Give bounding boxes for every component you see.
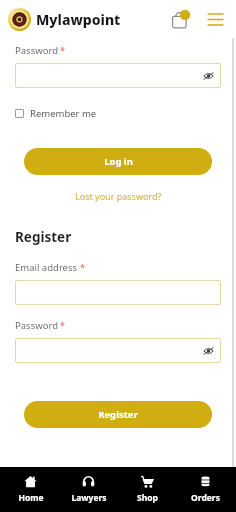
button[interactable]: Lost your password? [15,190,221,202]
button[interactable]: Cart, 0 items [170,6,196,32]
staticText: Log in [104,155,133,168]
staticText: Orders [191,492,220,504]
button[interactable]: Remember me [15,107,97,120]
staticText: Email address [15,261,78,274]
staticText: * [60,319,65,331]
button[interactable]: Mylawpoint logo [8,8,31,31]
button[interactable]: Home [3,471,58,508]
button[interactable]: Show password [202,344,215,357]
staticText: Home [18,492,44,504]
button[interactable]: Show password [202,69,215,82]
staticText: Password [15,44,58,57]
button[interactable]: Lawyers [61,471,116,508]
staticText: Mylawpoint [36,10,121,29]
staticText: Shop [137,492,158,504]
staticText: Remember me [30,107,97,120]
staticText: Password [15,319,58,332]
button[interactable] [15,280,221,305]
button[interactable]: Show password [15,63,221,88]
staticText: Lost your password? [75,190,162,202]
staticText: Register [98,408,138,421]
button[interactable]: Menu [204,8,226,30]
button[interactable]: Orders [178,471,233,508]
staticText: Lawyers [71,492,107,504]
button[interactable]: Register [24,401,212,428]
staticText: Register [15,228,72,246]
staticText: * [80,261,85,273]
button[interactable]: Show password [15,338,221,363]
button[interactable]: Shop [120,471,175,508]
button[interactable]: Log in [24,148,212,175]
staticText: * [60,44,65,56]
